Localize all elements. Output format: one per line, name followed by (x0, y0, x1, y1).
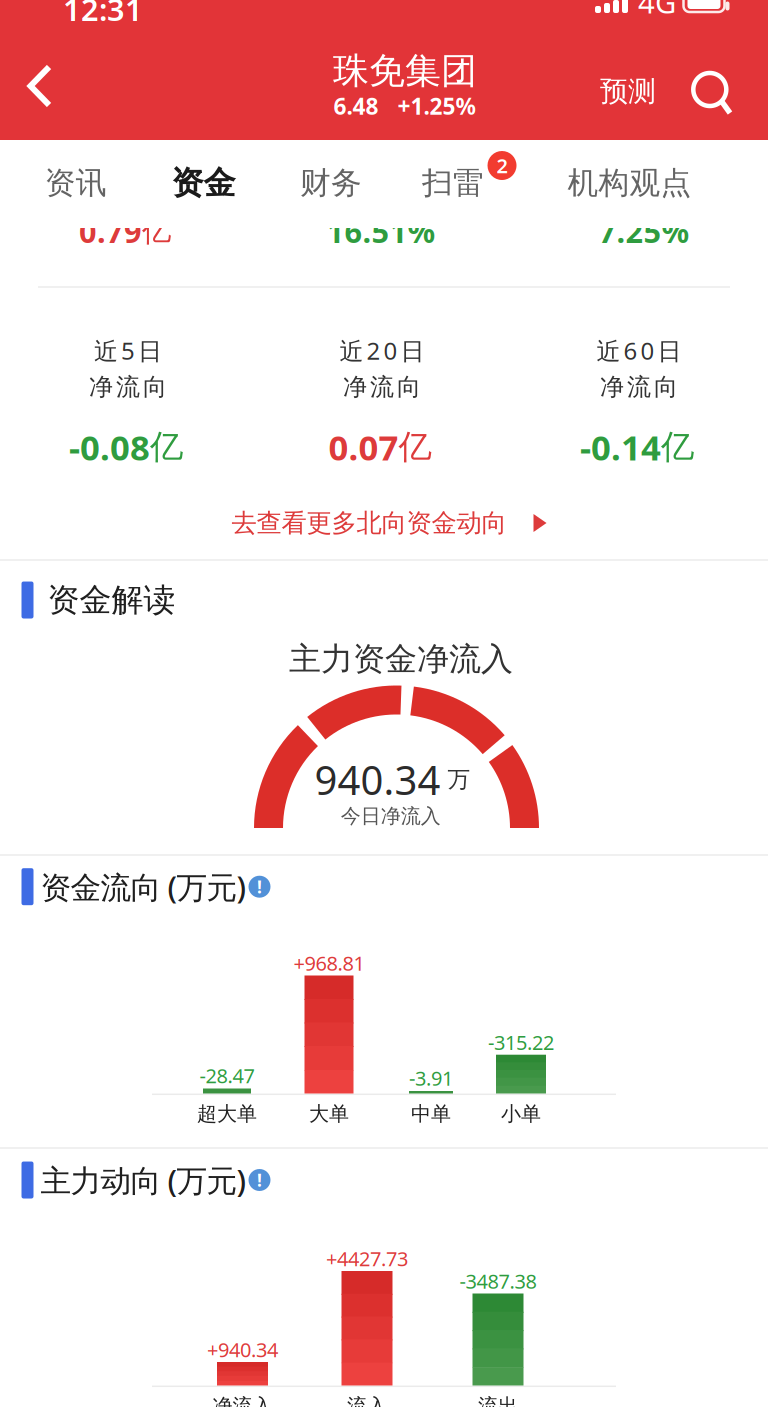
staticText: 资金流向 (万元) (40, 866, 246, 907)
staticText: 亿 (150, 426, 183, 467)
staticText: 近60日 (596, 335, 681, 366)
staticText: 近5日 (94, 335, 162, 366)
staticText: 资讯 (45, 164, 107, 202)
staticText: 小单 (501, 1101, 541, 1126)
staticText: 亿 (142, 213, 171, 249)
staticText: 流入 (347, 1394, 387, 1407)
button[interactable]: 预测 (600, 74, 656, 109)
staticText: 亿 (661, 426, 694, 467)
staticText: ! (257, 1168, 262, 1191)
staticText: 12:31 (63, 0, 143, 29)
staticText: 0.07 (328, 424, 398, 470)
button[interactable]: Back (29, 65, 53, 106)
staticText: 资金 (172, 163, 236, 203)
staticText: 超大单 (197, 1101, 257, 1126)
button[interactable]: Info (248, 1168, 270, 1191)
staticText: -3.91 (409, 1065, 453, 1091)
staticText: 净流向 (343, 372, 421, 402)
staticText: ! (257, 875, 262, 898)
staticText: 资金解读 (47, 580, 175, 620)
staticText: 6.48 (333, 91, 378, 121)
staticText: 流出 (478, 1394, 518, 1407)
staticText: -315.22 (488, 1029, 554, 1055)
staticText: 4G (638, 0, 676, 21)
staticText: 中单 (411, 1101, 451, 1126)
staticText: -0.08 (69, 424, 150, 470)
staticText: 净流入 (212, 1394, 272, 1407)
staticText: 0.79 (79, 211, 142, 251)
button[interactable]: 扫雷 (422, 164, 484, 202)
staticText: 净流向 (89, 372, 167, 402)
staticText: 净流向 (600, 372, 678, 402)
staticText: 扫雷 (422, 164, 484, 202)
button[interactable]: Info (248, 875, 270, 898)
staticText: 近20日 (339, 335, 424, 366)
staticText: 去查看更多北向资金动向 (231, 507, 506, 538)
staticText: 大单 (309, 1101, 349, 1126)
staticText: 2 (496, 152, 507, 179)
staticText: +940.34 (207, 1336, 278, 1363)
staticText: 940.34 (314, 753, 440, 806)
staticText: 珠免集团 (333, 49, 477, 93)
staticText: +1.25% (397, 91, 475, 121)
staticText: 万 (447, 766, 470, 793)
staticText: 主力动向 (万元) (40, 1160, 246, 1200)
button[interactable]: 财务 (300, 164, 362, 202)
staticText: -3487.38 (459, 1268, 536, 1294)
staticText: 财务 (300, 164, 362, 202)
button[interactable]: Search (688, 69, 734, 115)
button[interactable]: 去查看更多北向资金动向 (231, 507, 546, 538)
staticText: 16.51% (326, 211, 435, 251)
button[interactable]: 资讯 (45, 164, 107, 202)
staticText: +4427.73 (326, 1245, 408, 1272)
staticText: 亿 (398, 426, 431, 467)
staticText: 今日净流入 (341, 804, 441, 828)
button[interactable]: 资金 (172, 163, 236, 203)
staticText: 7.25% (598, 211, 689, 251)
staticText: 预测 (600, 74, 656, 109)
staticText: -28.47 (199, 1062, 254, 1089)
staticText: +968.81 (293, 950, 364, 976)
staticText: -0.14 (580, 424, 661, 470)
staticText: 主力资金净流入 (289, 639, 513, 679)
staticText: 机构观点 (567, 164, 691, 202)
button[interactable]: 机构观点 (567, 164, 691, 202)
